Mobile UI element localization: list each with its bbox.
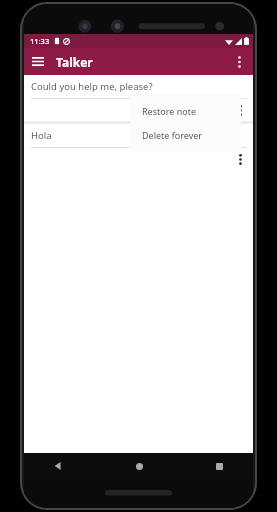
button[interactable]: More options — [226, 48, 253, 75]
staticText: Restore note — [142, 105, 196, 117]
button[interactable]: Note options — [229, 148, 251, 170]
button[interactable]: Open navigation drawer — [24, 48, 51, 75]
staticText: 11:33 — [30, 36, 50, 46]
button[interactable]: Home — [127, 454, 151, 478]
button[interactable]: Delete forever — [131, 123, 241, 147]
staticText: Could you help me, please? — [31, 80, 153, 93]
staticText: Talker — [56, 54, 93, 70]
button[interactable]: Recent apps — [207, 454, 231, 478]
button[interactable]: Note options — [229, 99, 251, 121]
staticText: Hola — [31, 129, 52, 142]
button[interactable]: Could you help me, please? — [24, 75, 253, 121]
staticText: Delete forever — [142, 129, 203, 141]
button[interactable]: Hola — [24, 124, 253, 170]
button[interactable]: Restore note — [131, 99, 241, 123]
button[interactable]: Back — [46, 454, 70, 478]
